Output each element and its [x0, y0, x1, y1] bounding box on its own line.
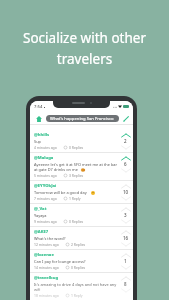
- button[interactable]: @EYYOkJai: [30, 181, 133, 203]
- button[interactable]: Downvote: [119, 264, 132, 270]
- button[interactable]: @Maluga: [30, 153, 133, 180]
- staticText: 1 Reply: [71, 293, 83, 298]
- staticText: 2: [124, 138, 127, 144]
- staticText: 7 minutes ago: [34, 196, 57, 201]
- staticText: 6: [124, 161, 127, 167]
- button[interactable]: Upvote: [119, 229, 132, 235]
- button[interactable]: Upvote: [119, 183, 132, 189]
- staticText: What's happening San Francisco: [50, 116, 114, 122]
- button[interactable]: @_Vat: [30, 204, 133, 226]
- staticText: @AKE7: [34, 229, 49, 235]
- button[interactable]: Upvote: [119, 252, 132, 258]
- staticText: Socialize with other travelers: [23, 29, 146, 68]
- staticText: 0 Replies: [69, 145, 84, 150]
- staticText: 1: [124, 258, 127, 264]
- button[interactable]: Upvote: [119, 155, 132, 161]
- staticText: Sup: [34, 139, 41, 144]
- button[interactable]: Downvote: [119, 167, 132, 173]
- staticText: 16: [123, 235, 129, 241]
- staticText: 2 Replies: [71, 242, 86, 247]
- staticText: 0 Replies: [69, 219, 84, 224]
- button[interactable]: Compose: [120, 113, 131, 124]
- staticText: @EYYOkJai: [34, 183, 57, 189]
- staticText: @lozenae: [34, 252, 54, 258]
- button[interactable]: Upvote: [119, 206, 132, 212]
- staticText: Can I pay for lounge access?: [34, 259, 86, 264]
- staticText: @travelbug: [34, 275, 59, 281]
- staticText: 12 minutes ago: [34, 242, 59, 247]
- button[interactable]: Upvote: [119, 132, 132, 138]
- button[interactable]: Upvote: [119, 275, 132, 281]
- staticText: 9 minutes ago: [34, 219, 57, 224]
- button[interactable]: Downvote: [119, 218, 132, 224]
- staticText: 5 minutes ago: [34, 173, 57, 178]
- button[interactable]: Downvote: [119, 241, 132, 247]
- staticText: 0 Replies: [71, 265, 86, 270]
- staticText: 8: [124, 281, 127, 287]
- staticText: 7:54: [34, 104, 43, 110]
- staticText: 18 minutes ago: [34, 293, 59, 298]
- button[interactable]: Downvote: [119, 144, 132, 150]
- staticText: What's the word?: [34, 236, 66, 241]
- staticText: Ayeeeee let's get it at SFO meet me at t…: [34, 162, 118, 172]
- button[interactable]: What's happening San Francisco: [46, 115, 119, 122]
- button[interactable]: Home: [33, 113, 45, 124]
- staticText: @hhills: [34, 132, 50, 138]
- staticText: 4 minutes ago: [34, 145, 57, 150]
- staticText: @Maluga: [34, 155, 54, 161]
- staticText: 14 minutes ago: [34, 265, 59, 270]
- button[interactable]: Downvote: [119, 195, 132, 201]
- staticText: Tomorrow will be a good day: [34, 190, 87, 195]
- staticText: 1 Reply: [69, 196, 81, 201]
- button[interactable]: Downvote: [119, 287, 132, 293]
- button[interactable]: @hhills: [30, 130, 133, 152]
- staticText: It's amazing to drive 4 days and not hav…: [34, 282, 118, 292]
- staticText: Yayaya: [34, 213, 47, 218]
- staticText: @_Vat: [34, 206, 47, 212]
- button[interactable]: @lozenae: [30, 250, 133, 272]
- button[interactable]: @AKE7: [30, 227, 133, 249]
- staticText: 3: [124, 212, 127, 218]
- staticText: 3 Replies: [69, 173, 84, 178]
- staticText: 10: [123, 189, 129, 195]
- button[interactable]: @travelbug: [30, 273, 133, 300]
